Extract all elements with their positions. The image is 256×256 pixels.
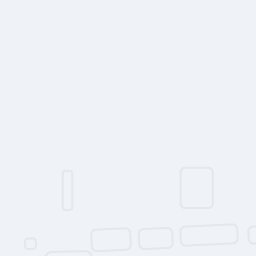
button[interactable]: Key xyxy=(91,229,130,250)
button[interactable]: Key xyxy=(25,238,36,249)
button[interactable]: Item xyxy=(63,171,72,210)
button[interactable]: Key xyxy=(180,225,237,244)
button[interactable]: Card xyxy=(181,168,213,208)
button[interactable]: Key xyxy=(45,251,92,256)
button[interactable]: Key xyxy=(139,228,172,248)
button[interactable]: Key xyxy=(248,226,256,243)
